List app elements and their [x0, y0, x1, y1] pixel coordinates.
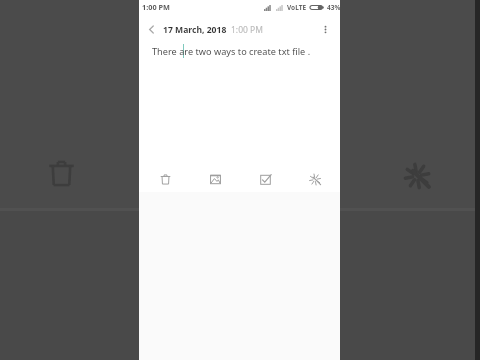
staticText: 1:00 PM [231, 24, 263, 36]
staticText: VoLTE [287, 3, 307, 12]
staticText: 43% [327, 3, 341, 12]
staticText: 1:00 PM [142, 2, 170, 12]
button[interactable]: Checklist [240, 166, 290, 192]
button[interactable]: Back [140, 18, 162, 40]
button[interactable]: Insert image [190, 166, 240, 192]
staticText: 17 March, 2018 [163, 24, 227, 36]
button[interactable]: Delete [140, 166, 190, 192]
button[interactable]: Note body [139, 40, 340, 166]
button[interactable]: Format [290, 166, 340, 192]
staticText: There are two ways to create txt file . [152, 45, 311, 58]
button[interactable]: More options [314, 18, 336, 40]
